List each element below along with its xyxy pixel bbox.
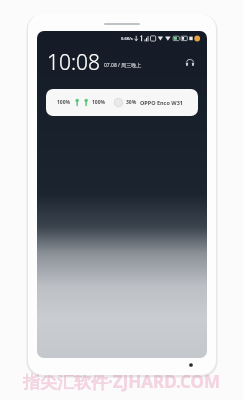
staticText: 100% (57, 99, 71, 106)
staticText: OPPO Enco W31 (140, 99, 183, 106)
button[interactable]: 100% (46, 89, 198, 116)
button[interactable]: Headphones (182, 55, 198, 71)
staticText: 100% (92, 99, 106, 106)
staticText: 10:08 (47, 48, 101, 77)
staticText: 30% (126, 99, 137, 106)
staticText: 指尖汇软件·ZJHARD.COM (0, 370, 243, 393)
staticText: 07.08 / 周三晚上 (104, 62, 142, 69)
staticText: 0.6K/s (121, 36, 133, 41)
